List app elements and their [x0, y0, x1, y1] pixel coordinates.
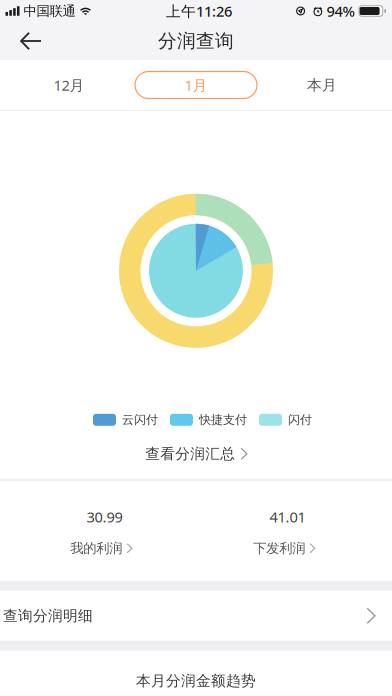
staticText: 41.01	[269, 507, 305, 527]
button[interactable]: 30.99	[13, 481, 196, 581]
staticText: 94%	[327, 1, 355, 21]
staticText: 中国联通	[23, 3, 75, 19]
staticText: 30.99	[86, 507, 122, 527]
staticText: 分润查询	[158, 29, 234, 52]
staticText: 1月	[184, 75, 207, 95]
staticText: 12月	[53, 75, 84, 95]
button[interactable]: 12月	[12, 60, 126, 110]
staticText: 查询分润明细	[3, 607, 93, 625]
button[interactable]: 本月	[265, 60, 379, 110]
button[interactable]: 41.01	[196, 481, 379, 581]
button[interactable]: 查看分润汇总	[135, 427, 257, 472]
staticText: 查看分润汇总	[145, 445, 235, 463]
staticText: 本月	[307, 76, 337, 94]
staticText: 闪付	[288, 412, 312, 427]
staticText: 本月分润金额趋势	[136, 672, 256, 690]
staticText: 我的利润	[70, 540, 122, 556]
staticText: 快捷支付	[199, 412, 247, 427]
staticText: 上午11:26	[166, 1, 232, 21]
button[interactable]: Back	[0, 22, 55, 60]
button[interactable]: 查询分润明细	[0, 591, 392, 641]
staticText: 下发利润	[253, 540, 305, 556]
staticText: 云闪付	[122, 412, 158, 427]
button[interactable]: 1月	[135, 71, 257, 98]
